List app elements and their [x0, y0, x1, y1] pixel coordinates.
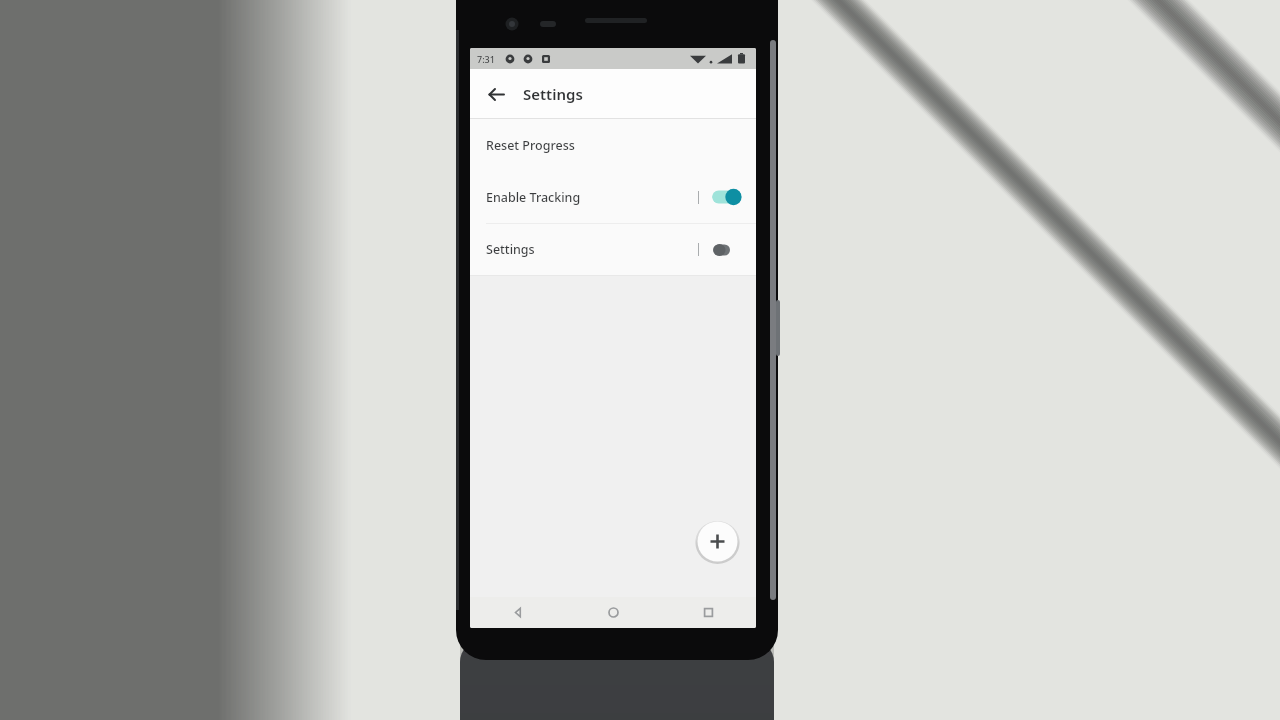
button[interactable]: Back [470, 597, 566, 628]
button[interactable]: Add [695, 519, 740, 564]
button[interactable]: Home [566, 597, 661, 628]
button[interactable]: Enable Tracking [712, 187, 742, 207]
staticText: Enable Tracking [486, 189, 581, 206]
button[interactable]: Settings [712, 240, 742, 260]
button[interactable]: Reset Progress [470, 119, 756, 171]
button[interactable]: Recents [661, 597, 756, 628]
staticText: Reset Progress [486, 137, 575, 154]
button[interactable]: Settings [470, 224, 756, 275]
button[interactable]: Enable Tracking [470, 171, 756, 223]
staticText: Settings [486, 241, 535, 258]
staticText: 7:31 [477, 53, 495, 65]
staticText: Settings [523, 84, 583, 104]
button[interactable]: Back [481, 79, 511, 109]
